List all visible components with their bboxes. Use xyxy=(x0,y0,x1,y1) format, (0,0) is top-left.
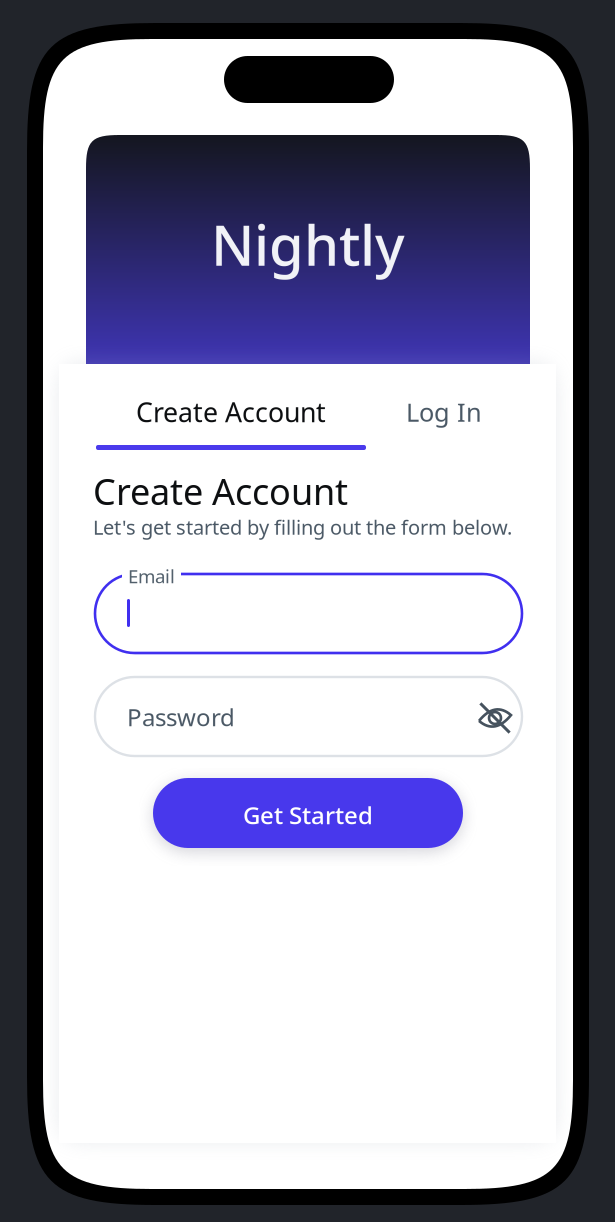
staticText: Password xyxy=(127,701,235,733)
staticText: Email xyxy=(128,564,175,588)
staticText: Get Started xyxy=(243,799,373,831)
staticText: Create Account xyxy=(93,467,348,515)
staticText: Create Account xyxy=(136,394,326,430)
staticText: Nightly xyxy=(211,207,405,281)
button[interactable]: Create Account xyxy=(95,398,367,450)
button[interactable]: Log In xyxy=(376,398,512,426)
staticText: Log In xyxy=(406,395,482,429)
button[interactable]: Get Started xyxy=(153,778,463,848)
staticText: Let's get started by filling out the for… xyxy=(93,514,512,540)
